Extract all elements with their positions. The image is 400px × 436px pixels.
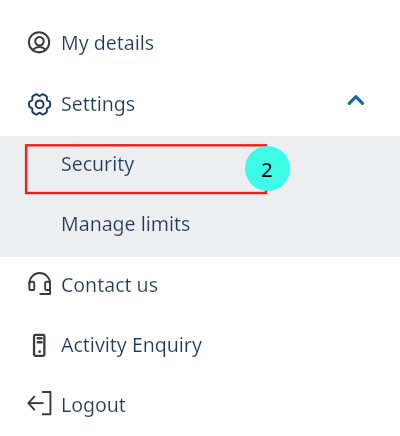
button[interactable]: Logout <box>0 373 400 433</box>
staticText: Activity Enquiry <box>61 331 202 358</box>
staticText: My details <box>61 29 155 56</box>
staticText: Security <box>61 150 135 177</box>
button[interactable]: My details <box>0 11 400 71</box>
staticText: 2 <box>261 155 273 183</box>
staticText: Settings <box>61 90 136 117</box>
staticText: Contact us <box>61 271 159 298</box>
button[interactable]: Activity Enquiry <box>0 313 400 373</box>
button[interactable]: Contact us <box>0 253 400 313</box>
button[interactable]: 2 unread notifications <box>245 146 290 191</box>
staticText: Manage limits <box>61 210 191 237</box>
staticText: Logout <box>61 391 126 418</box>
other: Collapse Settings <box>348 93 364 109</box>
button[interactable]: Security <box>0 132 400 192</box>
button[interactable]: Settings <box>0 72 400 132</box>
button[interactable]: Manage limits <box>0 192 400 252</box>
